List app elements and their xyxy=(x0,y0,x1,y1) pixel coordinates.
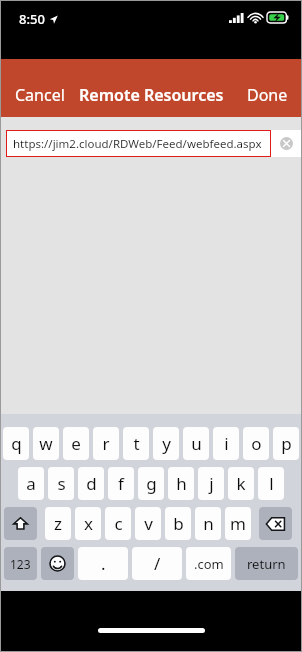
button[interactable]: q xyxy=(3,427,29,460)
staticText: t xyxy=(133,432,140,455)
staticText: q xyxy=(11,432,22,455)
button[interactable]: .com xyxy=(186,547,231,580)
staticText: v xyxy=(144,512,153,535)
staticText: w xyxy=(39,432,53,455)
button[interactable]: h xyxy=(168,467,194,500)
staticText: .com xyxy=(194,555,224,573)
button[interactable]: Emoji xyxy=(41,547,74,580)
button[interactable]: v xyxy=(135,507,161,540)
staticText: m xyxy=(230,512,246,535)
button[interactable]: c xyxy=(105,507,131,540)
button[interactable]: e xyxy=(63,427,89,460)
staticText: i xyxy=(224,432,229,455)
staticText: . xyxy=(101,552,106,575)
staticText: b xyxy=(173,512,184,535)
button[interactable]: Shift xyxy=(4,507,37,540)
staticText: Cancel xyxy=(15,84,65,106)
button[interactable]: n xyxy=(195,507,221,540)
staticText: r xyxy=(102,432,110,455)
button[interactable]: w xyxy=(33,427,59,460)
button[interactable]: m xyxy=(225,507,251,540)
staticText: l xyxy=(269,472,274,495)
staticText: 8:50 xyxy=(19,10,45,28)
staticText: Remote Resources xyxy=(79,84,224,106)
staticText: e xyxy=(71,432,81,455)
staticText: return xyxy=(247,555,286,573)
button[interactable]: Cancel xyxy=(1,78,79,112)
staticText: x xyxy=(84,512,93,535)
button[interactable]: x xyxy=(75,507,101,540)
button[interactable]: b xyxy=(165,507,191,540)
staticText: f xyxy=(118,472,124,495)
staticText: n xyxy=(203,512,214,535)
button[interactable]: t xyxy=(123,427,149,460)
staticText: j xyxy=(209,472,214,495)
button[interactable]: Backspace xyxy=(259,507,292,540)
button[interactable]: / xyxy=(132,547,182,580)
button[interactable]: s xyxy=(48,467,74,500)
button[interactable]: p xyxy=(273,427,299,460)
staticText: k xyxy=(236,472,246,495)
button[interactable]: a xyxy=(18,467,44,500)
button[interactable]: return xyxy=(235,547,298,580)
button[interactable]: f xyxy=(108,467,134,500)
staticText: z xyxy=(54,512,62,535)
staticText: Done xyxy=(247,84,288,106)
staticText: y xyxy=(162,432,171,455)
staticText: s xyxy=(57,472,66,495)
staticText: https://jim2.cloud/RDWeb/Feed/webfeed.as… xyxy=(13,136,262,152)
staticText: h xyxy=(176,472,187,495)
button[interactable]: y xyxy=(153,427,179,460)
staticText: o xyxy=(251,432,262,455)
button[interactable]: o xyxy=(243,427,269,460)
button[interactable]: z xyxy=(45,507,71,540)
button[interactable]: k xyxy=(228,467,254,500)
staticText: g xyxy=(146,472,157,495)
button[interactable]: Done xyxy=(234,78,301,112)
button[interactable]: . xyxy=(78,547,128,580)
staticText: / xyxy=(154,552,161,575)
button[interactable]: g xyxy=(138,467,164,500)
button[interactable]: r xyxy=(93,427,119,460)
button[interactable]: d xyxy=(78,467,104,500)
staticText: c xyxy=(114,512,123,535)
staticText: p xyxy=(281,432,292,455)
button[interactable]: Clear text xyxy=(271,130,301,157)
staticText: a xyxy=(26,472,36,495)
staticText: 123 xyxy=(10,556,31,572)
button[interactable]: i xyxy=(213,427,239,460)
button[interactable]: 123 xyxy=(4,547,37,580)
button[interactable]: u xyxy=(183,427,209,460)
button[interactable]: j xyxy=(198,467,224,500)
staticText: d xyxy=(86,472,97,495)
button[interactable]: https://jim2.cloud/RDWeb/Feed/webfeed.as… xyxy=(6,130,271,157)
button[interactable]: l xyxy=(258,467,284,500)
staticText: u xyxy=(191,432,202,455)
